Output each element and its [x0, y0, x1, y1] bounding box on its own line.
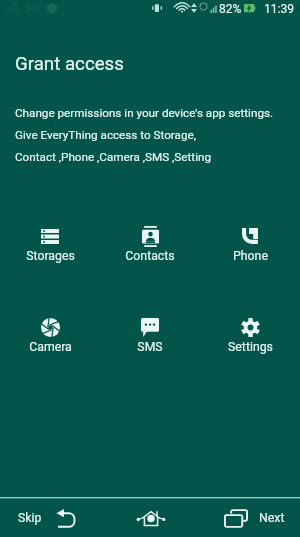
- staticText: Storages: [26, 249, 75, 263]
- button[interactable]: Settings: [200, 316, 300, 354]
- button[interactable]: Home: [121, 499, 181, 537]
- staticText: Skip: [18, 511, 42, 525]
- staticText: Contacts: [125, 249, 175, 263]
- staticText: Contact ,Phone ,Camera ,SMS ,Setting: [15, 150, 211, 164]
- staticText: KB/s: [7, 7, 22, 15]
- button[interactable]: Next: [224, 499, 294, 537]
- staticText: Grant access: [15, 53, 124, 75]
- staticText: 82%: [219, 2, 242, 16]
- staticText: Next: [259, 511, 285, 525]
- button[interactable]: Contacts: [100, 225, 200, 263]
- button[interactable]: Phone: [200, 225, 300, 263]
- button[interactable]: Storages: [0, 225, 100, 263]
- staticText: Change permissions in your device's app …: [15, 106, 274, 120]
- staticText: 11:39: [264, 2, 294, 16]
- staticText: SMS: [137, 340, 163, 354]
- button[interactable]: Camera: [0, 316, 100, 354]
- button[interactable]: Skip: [12, 499, 92, 537]
- staticText: Settings: [228, 340, 273, 354]
- staticText: 4: [13, 0, 18, 8]
- button[interactable]: SMS: [100, 316, 200, 354]
- staticText: Camera: [29, 340, 72, 354]
- staticText: Phone: [233, 249, 268, 263]
- staticText: Give EveryThing access to Storage,: [15, 128, 197, 142]
